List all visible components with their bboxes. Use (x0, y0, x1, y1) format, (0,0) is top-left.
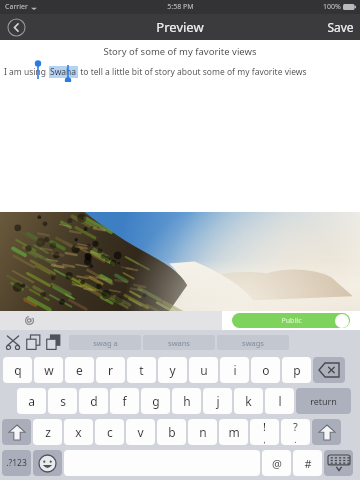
staticText: r (108, 362, 113, 378)
staticText: return (310, 395, 337, 407)
button[interactable]: Shift (312, 419, 341, 445)
button[interactable]: d (79, 388, 108, 414)
button[interactable]: return (296, 388, 351, 414)
button[interactable]: Shift (2, 419, 31, 445)
staticText: k (245, 393, 252, 409)
staticText: 5:58 PM (167, 2, 194, 12)
button[interactable]: n (188, 419, 217, 445)
button[interactable]: e (65, 357, 94, 383)
staticText: # (304, 456, 312, 471)
button[interactable]: swag a (69, 335, 141, 350)
button[interactable]: a (17, 388, 46, 414)
button[interactable]: Hide keyboard (324, 450, 353, 476)
staticText: 100% (323, 2, 341, 12)
button[interactable]: w (34, 357, 63, 383)
staticText: u (200, 362, 208, 378)
button[interactable]: Emoji (33, 450, 62, 476)
staticText: Swaha (50, 66, 77, 78)
button[interactable]: Copy (23, 332, 43, 352)
staticText: Carrier (5, 2, 28, 12)
staticText: , (263, 434, 266, 445)
staticText: I am using (4, 66, 49, 78)
staticText: q (14, 362, 22, 378)
button[interactable]: Save (327, 19, 354, 35)
button[interactable]: Public visibility toggle (232, 313, 350, 328)
staticText: s (60, 393, 66, 409)
staticText: ! (263, 419, 266, 434)
staticText: a (28, 393, 35, 409)
staticText: d (90, 393, 98, 409)
button[interactable]: swags (217, 335, 289, 350)
staticText: w (44, 362, 54, 378)
staticText: Preview (156, 18, 204, 36)
staticText: o (262, 362, 270, 378)
button[interactable]: r (96, 357, 125, 383)
staticText: swag a (93, 338, 118, 348)
staticText: y (169, 362, 176, 378)
staticText: ? (293, 419, 298, 434)
button[interactable]: i (220, 357, 249, 383)
button[interactable]: ? (281, 419, 310, 445)
button[interactable]: .?123 (2, 450, 31, 476)
button[interactable]: b (157, 419, 186, 445)
staticText: c (107, 424, 113, 440)
staticText: j (216, 393, 220, 409)
button[interactable]: l (265, 388, 294, 414)
button[interactable]: Back (6, 17, 26, 37)
button[interactable] (0, 311, 222, 330)
button[interactable]: Cut (3, 332, 23, 352)
staticText: Story of some of my favorite views (103, 45, 257, 58)
button[interactable]: # (293, 450, 322, 476)
button[interactable]: j (203, 388, 232, 414)
staticText: i (233, 362, 237, 378)
button[interactable]: z (33, 419, 62, 445)
button[interactable]: o (251, 357, 280, 383)
button[interactable]: swans (143, 335, 215, 350)
staticText: Save (327, 19, 354, 35)
staticText: h (183, 393, 191, 409)
button[interactable]: y (158, 357, 187, 383)
button[interactable]: x (64, 419, 93, 445)
button[interactable]: p (282, 357, 311, 383)
staticText: swags (242, 338, 264, 348)
button[interactable]: c (95, 419, 124, 445)
staticText: n (199, 424, 207, 440)
button[interactable]: t (127, 357, 156, 383)
button[interactable]: u (189, 357, 218, 383)
button[interactable]: v (126, 419, 155, 445)
staticText: to tell a little bit of story about some… (78, 66, 307, 78)
staticText: p (293, 362, 301, 378)
button[interactable]: Paste (43, 332, 63, 352)
staticText: z (45, 424, 51, 440)
staticText: swans (168, 338, 190, 348)
button[interactable]: m (219, 419, 248, 445)
staticText: f (122, 393, 127, 409)
button[interactable]: g (141, 388, 170, 414)
staticText: .?123 (6, 457, 27, 469)
staticText: g (152, 393, 160, 409)
button[interactable]: @ (262, 450, 291, 476)
button[interactable]: q (3, 357, 32, 383)
button[interactable]: h (172, 388, 201, 414)
staticText: Public (281, 316, 302, 326)
staticText: e (76, 362, 83, 378)
staticText: m (228, 424, 240, 440)
staticText: x (75, 424, 82, 440)
staticText: t (139, 362, 144, 378)
button[interactable]: Backspace (313, 357, 345, 383)
staticText: v (137, 424, 144, 440)
staticText: @ (272, 456, 282, 471)
staticText: b (168, 424, 176, 440)
staticText: l (278, 393, 282, 409)
button[interactable]: ! (250, 419, 279, 445)
button[interactable]: f (110, 388, 139, 414)
staticText: . (294, 434, 297, 445)
button[interactable]: k (234, 388, 263, 414)
button[interactable]: s (48, 388, 77, 414)
